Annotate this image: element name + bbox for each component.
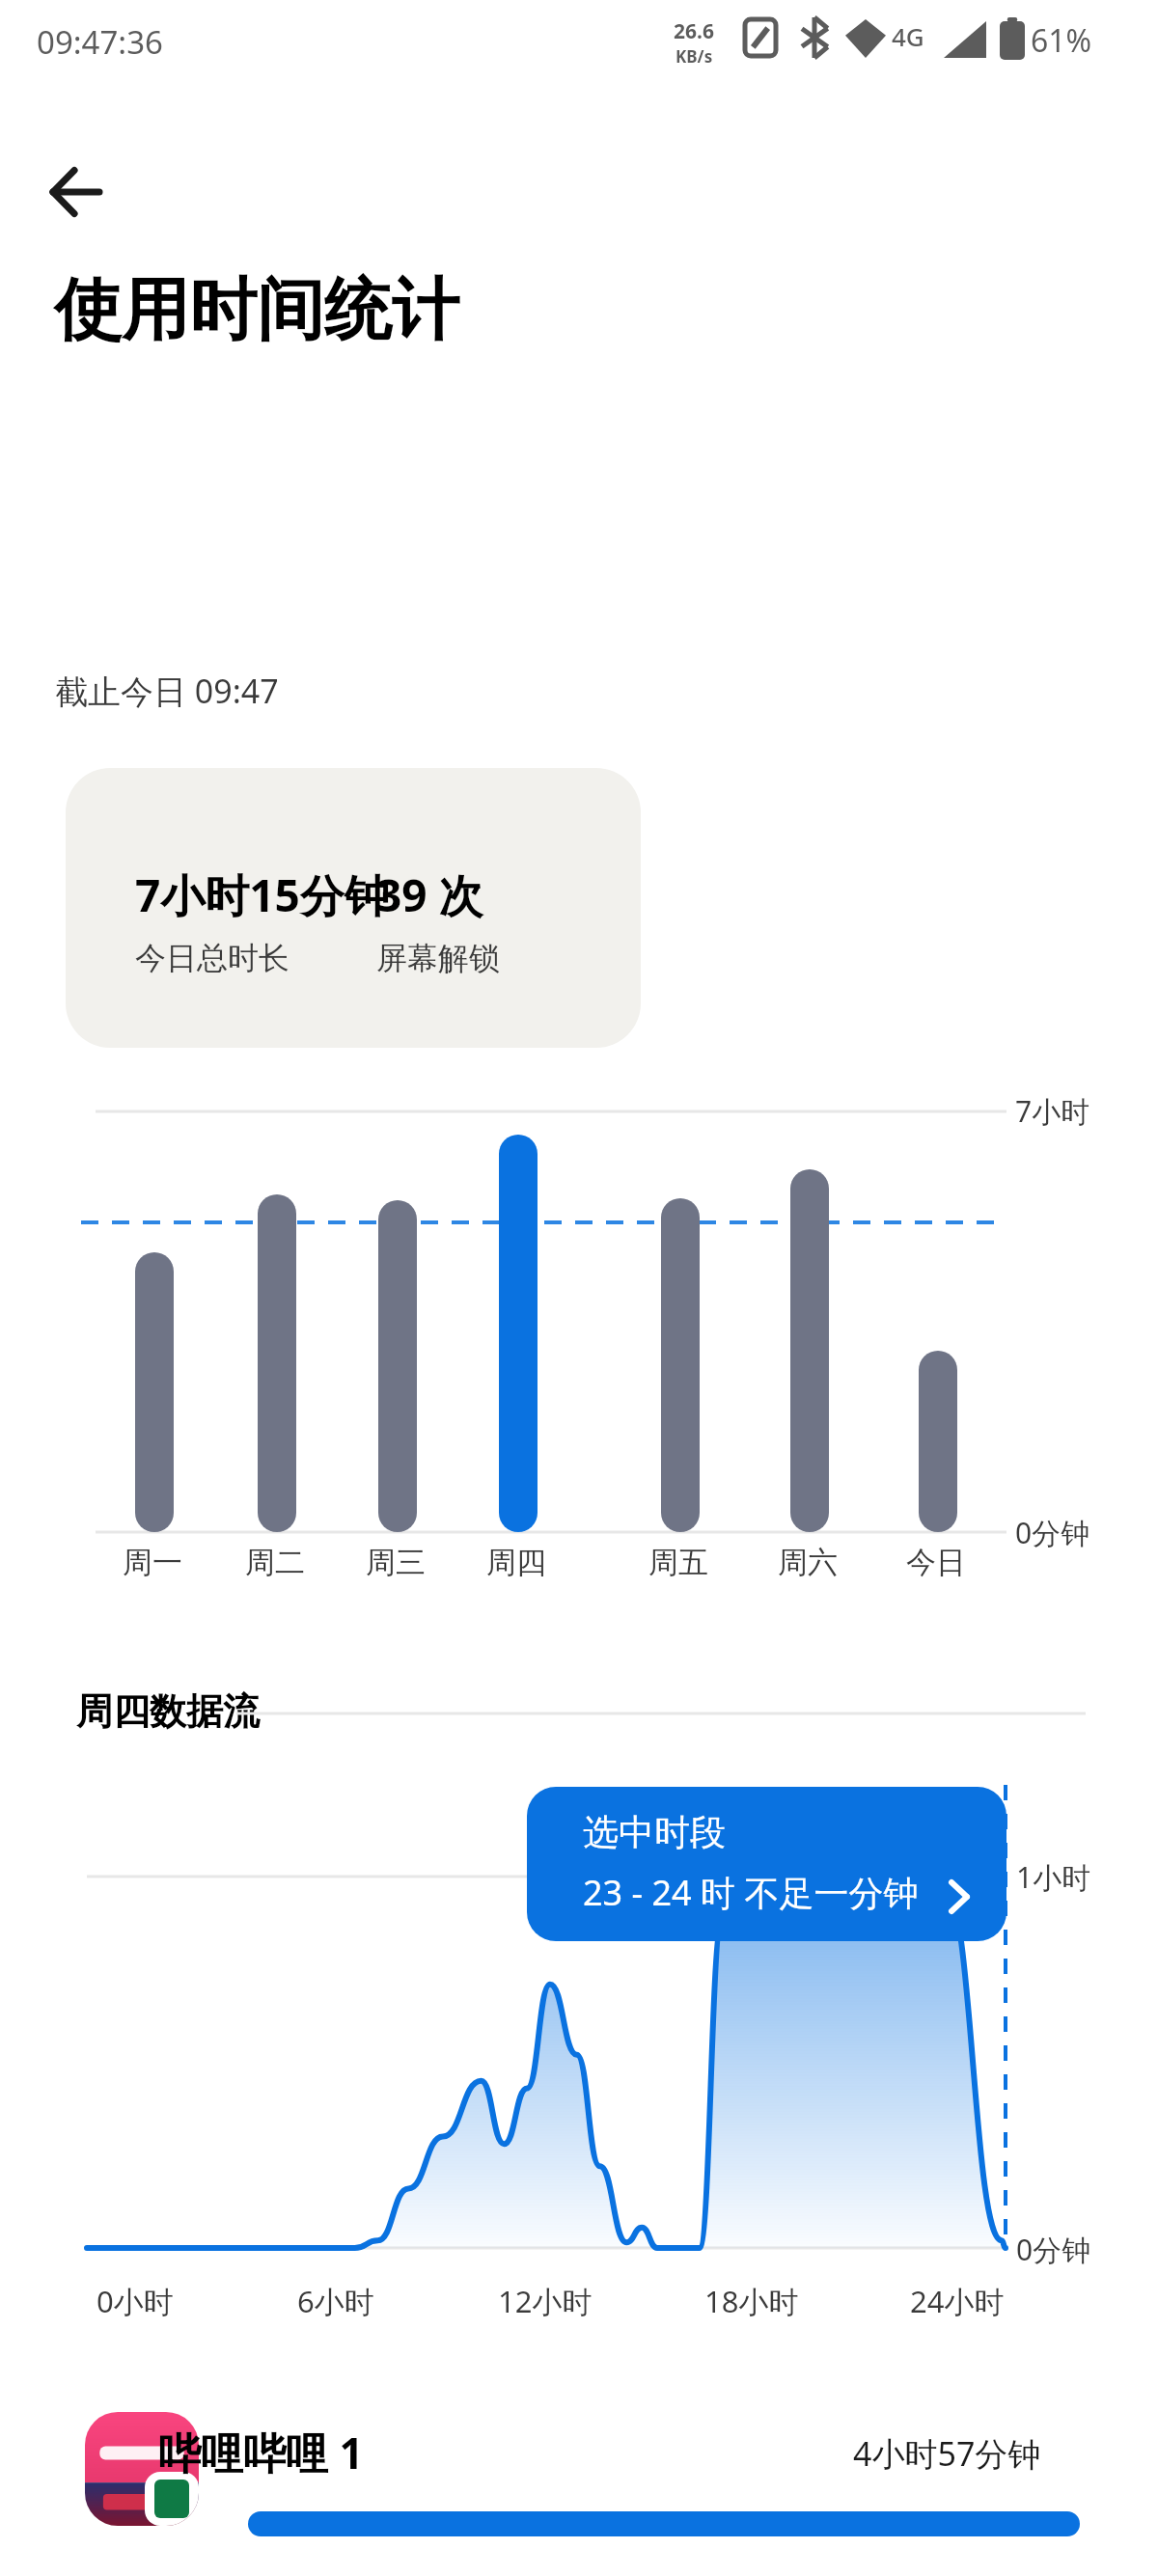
staticText: 0分钟: [1016, 2230, 1091, 2269]
staticText: 选中时段: [583, 1810, 726, 1855]
staticText: 周四: [486, 1544, 546, 1581]
staticText: 7小时: [1015, 1091, 1090, 1131]
staticText: 1小时: [1016, 1857, 1091, 1897]
staticText: 周三: [366, 1544, 426, 1581]
staticText: 截止今日 09:47: [55, 669, 279, 713]
staticText: 24小时: [910, 2281, 1005, 2321]
staticText: 周二: [245, 1544, 305, 1581]
staticText: 4G: [892, 19, 924, 53]
staticText: 周四数据流: [76, 1688, 260, 1735]
staticText: 周一: [123, 1544, 182, 1581]
staticText: 23 - 24 时 不足一分钟: [583, 1869, 919, 1916]
staticText: KB/s: [675, 45, 713, 68]
staticText: 0小时: [96, 2281, 174, 2321]
button[interactable]: 7小时15分钟: [66, 768, 641, 1048]
staticText: 26.6: [674, 17, 714, 45]
staticText: 使用时间统计: [54, 268, 459, 353]
staticText: 12小时: [498, 2281, 593, 2321]
button[interactable]: 选中时段: [527, 1787, 1006, 1941]
staticText: 6小时: [297, 2281, 374, 2321]
staticText: 周五: [648, 1544, 708, 1581]
button[interactable]: 哔哩哔哩 1: [0, 2379, 1158, 2572]
staticText: 4小时57分钟: [853, 2431, 1041, 2476]
button[interactable]: Back: [23, 140, 129, 246]
staticText: 今日: [906, 1544, 966, 1581]
staticText: 18小时: [704, 2281, 799, 2321]
staticText: 今日总时长: [135, 939, 289, 977]
staticText: 39 次: [376, 864, 483, 925]
staticText: 屏幕解锁: [376, 939, 500, 977]
staticText: 09:47:36: [37, 20, 163, 64]
staticText: 0分钟: [1015, 1513, 1090, 1552]
staticText: 哔哩哔哩 1: [158, 2424, 364, 2481]
staticText: 周六: [778, 1544, 838, 1581]
staticText: 61%: [1031, 19, 1092, 62]
staticText: 7小时15分钟: [135, 864, 389, 925]
